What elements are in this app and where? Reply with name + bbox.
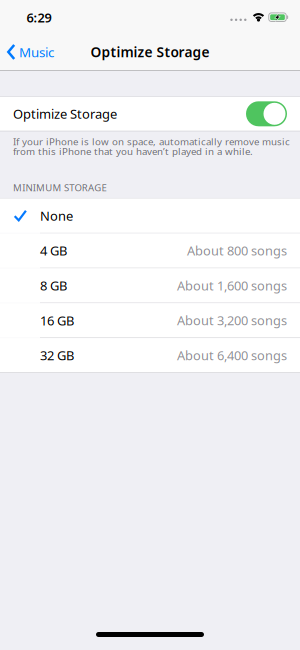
staticText: About 1,600 songs — [177, 277, 287, 294]
button[interactable]: Back to Music — [7, 34, 54, 69]
button[interactable]: Optimize Storage, on — [246, 101, 287, 126]
staticText: None — [40, 207, 73, 224]
staticText: About 6,400 songs — [177, 347, 287, 364]
staticText: 16 GB — [40, 312, 74, 329]
button[interactable]: 32 GB — [0, 338, 300, 372]
staticText: Optimize Storage — [13, 105, 117, 123]
staticText: About 800 songs — [187, 242, 287, 259]
staticText: Music — [19, 43, 54, 61]
button[interactable]: 4 GB — [0, 233, 300, 268]
staticText: MINIMUM STORAGE — [13, 181, 106, 194]
staticText: If your iPhone is low on space, automati… — [13, 135, 290, 158]
staticText: Optimize Storage — [90, 43, 209, 61]
staticText: 8 GB — [40, 277, 67, 294]
button[interactable]: 8 GB — [0, 268, 300, 303]
staticText: 6:29 — [26, 9, 51, 26]
button[interactable]: None — [0, 198, 300, 233]
button[interactable]: 16 GB — [0, 303, 300, 338]
staticText: 32 GB — [40, 346, 74, 364]
staticText: 4 GB — [40, 242, 67, 259]
staticText: About 3,200 songs — [177, 312, 287, 329]
